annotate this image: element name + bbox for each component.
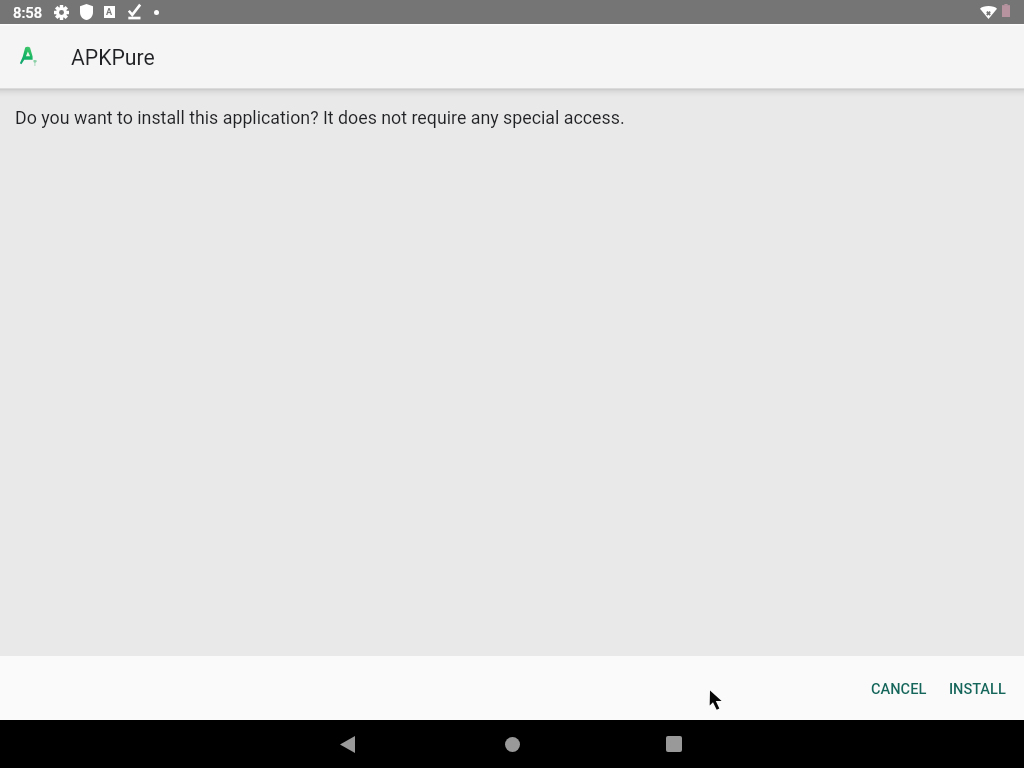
button[interactable]: Recent apps (638, 720, 710, 768)
staticText: INSTALL (949, 680, 1006, 697)
staticText: 8:58 (13, 4, 43, 21)
button[interactable]: CANCEL (863, 670, 935, 707)
button[interactable]: INSTALL (941, 670, 1014, 707)
staticText: CANCEL (871, 680, 927, 697)
button[interactable]: Home (476, 720, 548, 768)
staticText: Do you want to install this application?… (15, 107, 625, 128)
staticText: APKPure (71, 45, 155, 70)
button[interactable]: Back (311, 720, 383, 768)
staticText: A (106, 7, 113, 18)
